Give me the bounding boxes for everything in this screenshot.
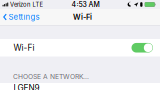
staticText: Settings [9,12,40,22]
button[interactable]: Settings [0,9,44,25]
staticText: Wi-Fi [13,43,34,53]
staticText: 4:53 AM [71,0,99,9]
button[interactable]: LGEN9 [0,83,160,90]
staticText: LGEN9 [13,83,39,90]
staticText: Wi-Fi [73,12,92,21]
staticText: Verizon [10,1,30,8]
staticText: LTE [32,1,43,8]
button[interactable]: Wi-Fi [0,39,160,56]
staticText: CHOOSE A NETWORK... [13,72,89,80]
